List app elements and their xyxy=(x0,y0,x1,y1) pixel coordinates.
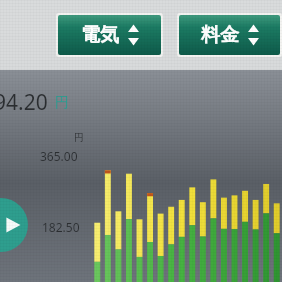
staticText: 円 xyxy=(55,94,69,112)
staticText: 365.00 xyxy=(40,148,78,164)
staticText: 182.50 xyxy=(42,219,80,235)
staticText: 円 xyxy=(74,131,84,144)
button[interactable]: 料金 xyxy=(179,15,280,55)
button[interactable]: 電気 xyxy=(58,15,161,55)
staticText: 料金 xyxy=(201,23,239,47)
button[interactable]: Next xyxy=(0,198,28,252)
staticText: 94.20 xyxy=(0,88,48,117)
staticText: 電気 xyxy=(81,23,119,47)
